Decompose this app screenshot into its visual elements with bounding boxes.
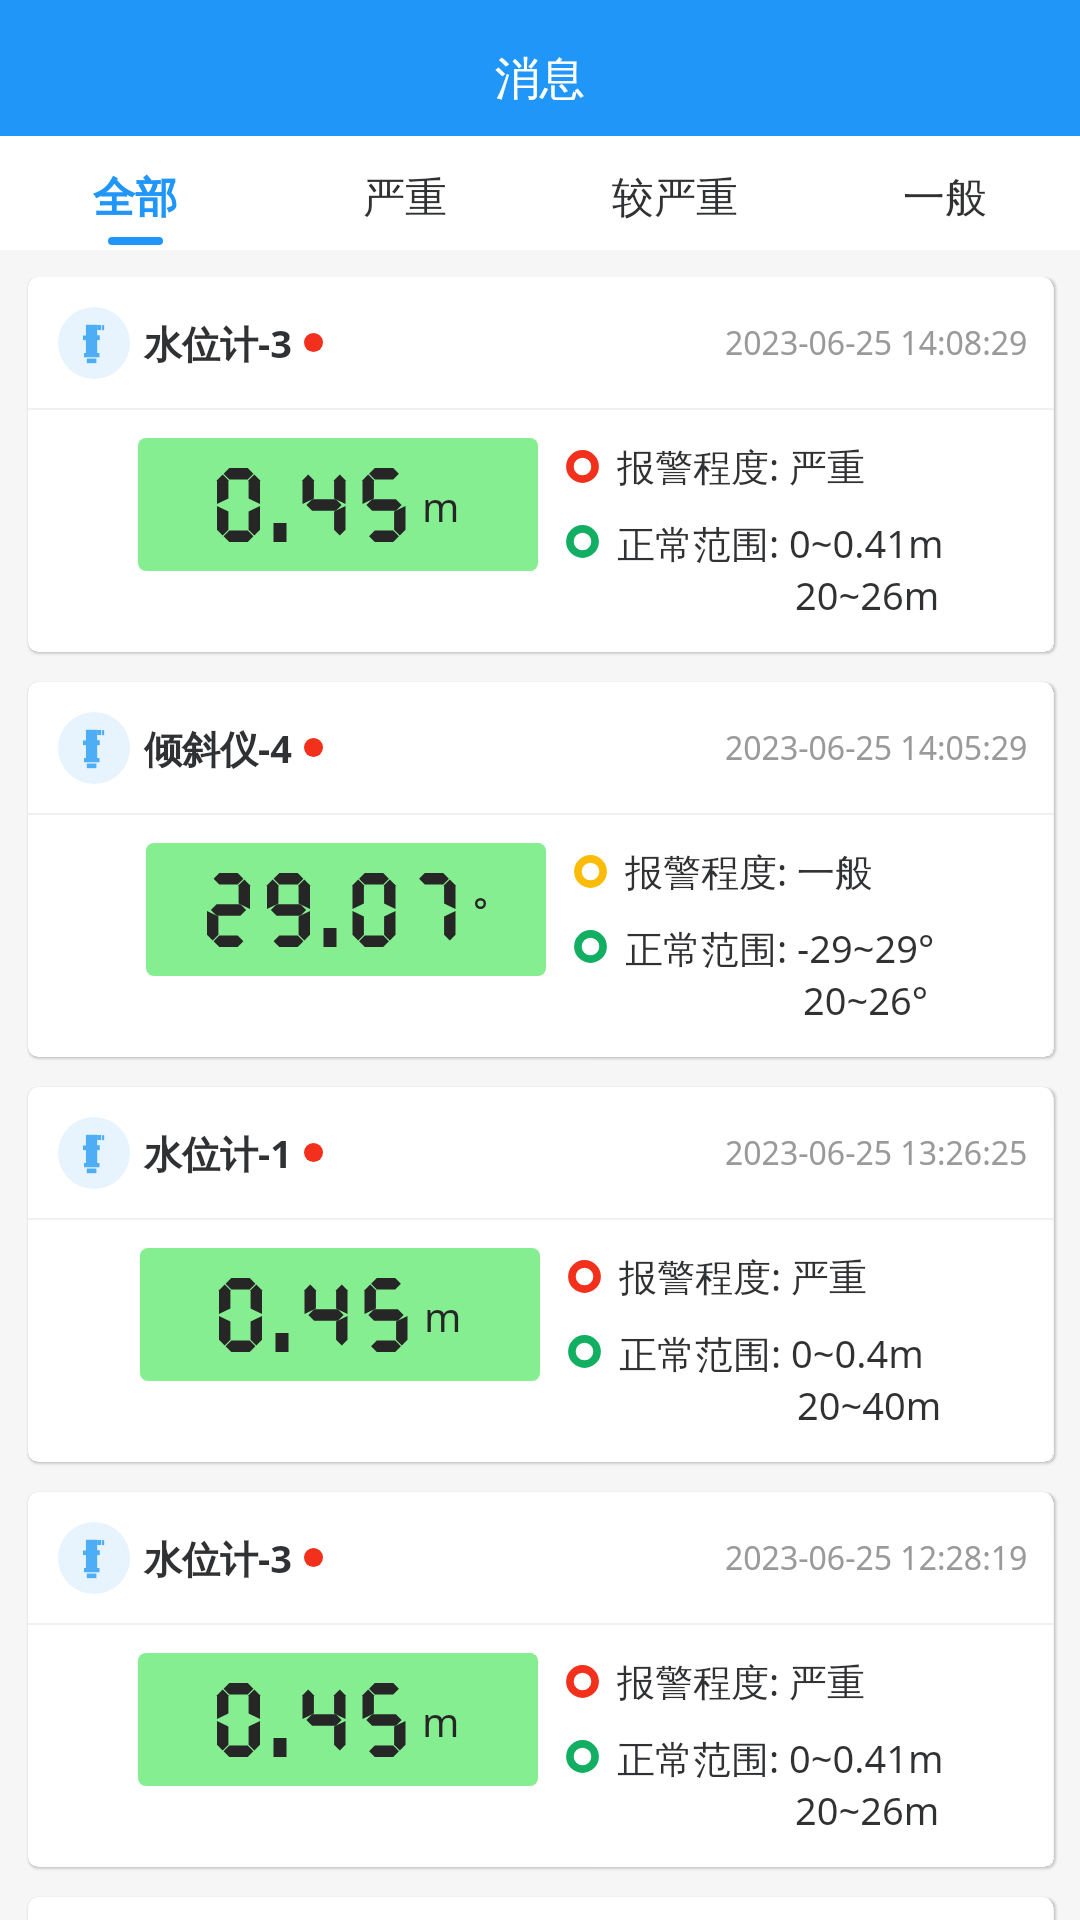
staticText: 报警程度: 一般: [625, 845, 874, 897]
staticText: 一般: [903, 172, 987, 225]
button[interactable]: 全部: [0, 136, 270, 250]
staticText: 水位计-3: [144, 1532, 292, 1584]
button[interactable]: 严重: [270, 136, 540, 250]
staticText: m: [424, 1289, 462, 1343]
staticText: m: [422, 1694, 460, 1748]
button[interactable]: 传感器图标: [28, 682, 1053, 1057]
staticText: 2023-06-25 13:26:25: [725, 1131, 1028, 1175]
staticText: 20~40m: [797, 1379, 942, 1431]
staticText: 水位计-3: [144, 317, 292, 369]
button[interactable]: 较严重: [540, 136, 810, 250]
staticText: 严重: [363, 172, 447, 225]
other: 传感器图标: [58, 307, 130, 379]
staticText: 20~26m: [795, 569, 940, 621]
staticText: 全部: [93, 172, 177, 225]
button[interactable]: 传感器图标: [28, 1087, 1053, 1462]
staticText: 正常范围: 0~0.41m: [617, 1732, 944, 1784]
staticText: 2023-06-25 12:28:19: [725, 1536, 1028, 1580]
staticText: 报警程度: 严重: [617, 1655, 866, 1707]
staticText: 倾斜仪-4: [144, 722, 292, 774]
staticText: 2023-06-25 14:08:29: [725, 321, 1028, 365]
staticText: 消息: [495, 51, 585, 108]
staticText: m: [422, 479, 460, 533]
staticText: 20~26m: [795, 1784, 940, 1836]
staticText: 报警程度: 严重: [617, 440, 866, 492]
other: 传感器图标: [58, 1522, 130, 1594]
button[interactable]: 传感器图标: [28, 277, 1053, 652]
staticText: 正常范围: 0~0.41m: [617, 517, 944, 569]
other: 传感器图标: [58, 712, 130, 784]
button[interactable]: 传感器图标: [28, 1492, 1053, 1867]
other: 传感器图标: [58, 1117, 130, 1189]
button[interactable]: 一般: [810, 136, 1080, 250]
staticText: 20~26°: [803, 974, 928, 1026]
staticText: 报警程度: 严重: [619, 1250, 868, 1302]
staticText: 较严重: [612, 172, 738, 225]
staticText: 正常范围: -29~29°: [625, 922, 935, 974]
staticText: 水位计-1: [144, 1127, 292, 1179]
staticText: 正常范围: 0~0.4m: [619, 1327, 924, 1379]
staticText: 2023-06-25 14:05:29: [725, 726, 1028, 770]
